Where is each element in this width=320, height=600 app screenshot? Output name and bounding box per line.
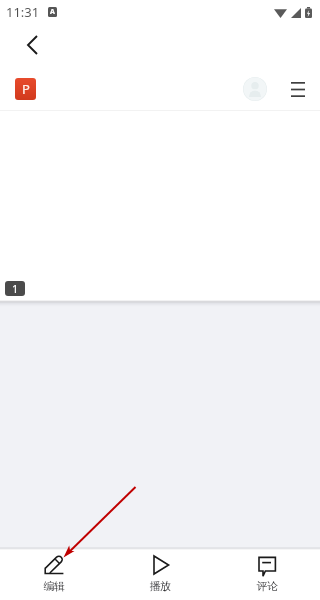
button[interactable]: 编辑 <box>1 550 107 600</box>
staticText: 编辑 <box>43 579 65 593</box>
button[interactable]: Back <box>14 27 50 63</box>
staticText: 播放 <box>149 579 171 593</box>
button[interactable]: 播放 <box>107 550 213 600</box>
staticText: A <box>50 7 55 17</box>
button[interactable]: 评论 <box>214 550 320 600</box>
button[interactable]: Presentation file <box>15 78 36 100</box>
staticText: 1 <box>12 281 19 296</box>
staticText: 评论 <box>256 579 278 593</box>
button[interactable]: Account <box>243 77 267 101</box>
button[interactable]: Slide number 1 <box>5 281 25 296</box>
staticText: P <box>22 80 30 98</box>
button[interactable]: Menu <box>283 74 313 104</box>
staticText: 11:31 <box>6 3 40 21</box>
